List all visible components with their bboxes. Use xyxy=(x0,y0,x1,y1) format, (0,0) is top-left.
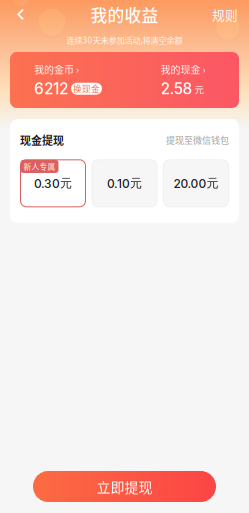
button[interactable]: 0.30元 xyxy=(20,160,85,207)
staticText: 提现至微信钱包 xyxy=(166,133,229,146)
staticText: 我的金币 › xyxy=(34,62,79,76)
staticText: 我的现金 › xyxy=(160,62,205,76)
button[interactable]: 立即提现 xyxy=(33,471,216,502)
button[interactable]: 我的现金 › xyxy=(124,52,239,108)
staticText: 元 xyxy=(194,82,203,96)
button[interactable]: 我的金币 › xyxy=(10,52,124,108)
staticText: 连续30天未参加活动,将清空余额 xyxy=(66,34,182,46)
staticText: 2.58 xyxy=(160,79,192,98)
staticText: 20.00元 xyxy=(173,176,218,191)
button[interactable]: 20.00元 xyxy=(163,160,228,207)
staticText: 立即提现 xyxy=(96,476,152,497)
button[interactable]: 提现至微信钱包 xyxy=(166,133,229,146)
button[interactable]: 规则 xyxy=(205,0,238,30)
staticText: 规则 xyxy=(212,5,238,24)
staticText: 现金提现 xyxy=(20,132,64,148)
staticText: 6212 xyxy=(34,79,68,98)
button[interactable]: Back xyxy=(9,2,32,27)
staticText: 我的收益 xyxy=(90,2,158,26)
staticText: 0.30元 xyxy=(34,176,72,191)
staticText: 新人专属 xyxy=(23,161,55,172)
staticText: 换现金 xyxy=(73,82,100,95)
button[interactable]: 0.10元 xyxy=(92,160,157,207)
staticText: 0.10元 xyxy=(107,176,142,191)
